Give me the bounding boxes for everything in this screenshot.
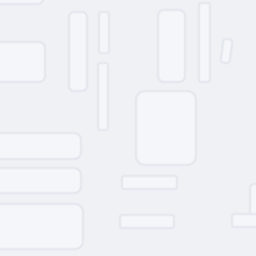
button[interactable]: Row 1 — [0, 133, 81, 159]
button[interactable]: Row 3 — [0, 204, 83, 249]
button[interactable]: Preview — [136, 91, 196, 165]
button[interactable]: Card — [0, 42, 45, 82]
button[interactable]: Row 2 — [0, 168, 81, 193]
